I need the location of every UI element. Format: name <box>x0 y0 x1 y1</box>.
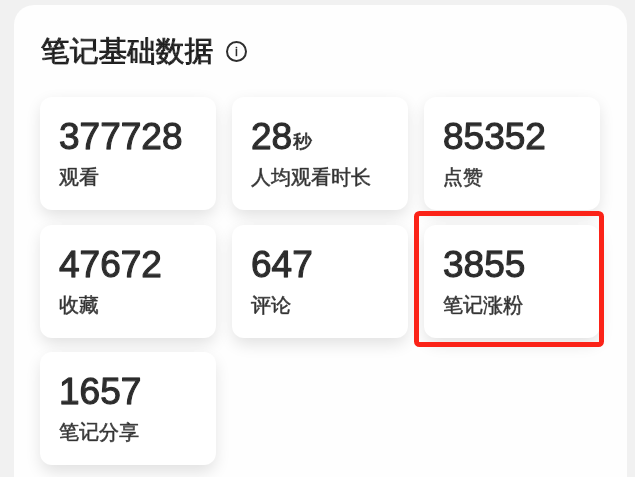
staticText: 人均观看时长 <box>251 165 371 190</box>
staticText: 笔记涨粉 <box>443 293 523 318</box>
staticText: 47672 <box>59 244 162 285</box>
staticText: 点赞 <box>443 165 483 190</box>
button[interactable]: 85352 <box>424 97 600 210</box>
staticText: 评论 <box>251 293 291 318</box>
staticText: 47672 <box>59 244 162 285</box>
button[interactable]: 数据说明 <box>226 41 247 62</box>
staticText: 观看 <box>59 165 99 190</box>
staticText: 3855 <box>443 244 526 285</box>
staticText: 笔记分享 <box>59 420 139 445</box>
button[interactable]: 47672 <box>40 225 216 338</box>
staticText: 秒 <box>293 130 312 154</box>
staticText: 笔记涨粉 <box>443 293 523 318</box>
staticText: 观看 <box>59 165 99 190</box>
staticText: 收藏 <box>59 293 99 318</box>
staticText: 1657 <box>59 371 142 412</box>
button[interactable]: 647 <box>232 225 408 338</box>
staticText: 85352 <box>443 116 546 157</box>
staticText: 1657 <box>59 371 142 412</box>
staticText: 点赞 <box>443 165 483 190</box>
staticText: 377728 <box>59 116 183 157</box>
staticText: 3855 <box>443 244 526 285</box>
staticText: 笔记分享 <box>59 420 139 445</box>
staticText: i <box>235 44 238 59</box>
staticText: 秒 <box>293 130 312 154</box>
staticText: i <box>235 44 238 59</box>
button[interactable]: 377728 <box>40 97 216 210</box>
staticText: 评论 <box>251 293 291 318</box>
staticText: 28 <box>251 116 293 157</box>
button[interactable]: 1657 <box>40 352 216 465</box>
staticText: 647 <box>251 244 313 285</box>
staticText: 647 <box>251 244 313 285</box>
staticText: 28 <box>251 116 293 157</box>
staticText: 笔记基础数据 <box>41 33 214 69</box>
button[interactable]: 3855 <box>424 225 600 338</box>
staticText: 笔记基础数据 <box>41 33 214 69</box>
staticText: 人均观看时长 <box>251 165 371 190</box>
staticText: 377728 <box>59 116 183 157</box>
staticText: 收藏 <box>59 293 99 318</box>
staticText: 85352 <box>443 116 546 157</box>
button[interactable]: 28 <box>232 97 408 210</box>
